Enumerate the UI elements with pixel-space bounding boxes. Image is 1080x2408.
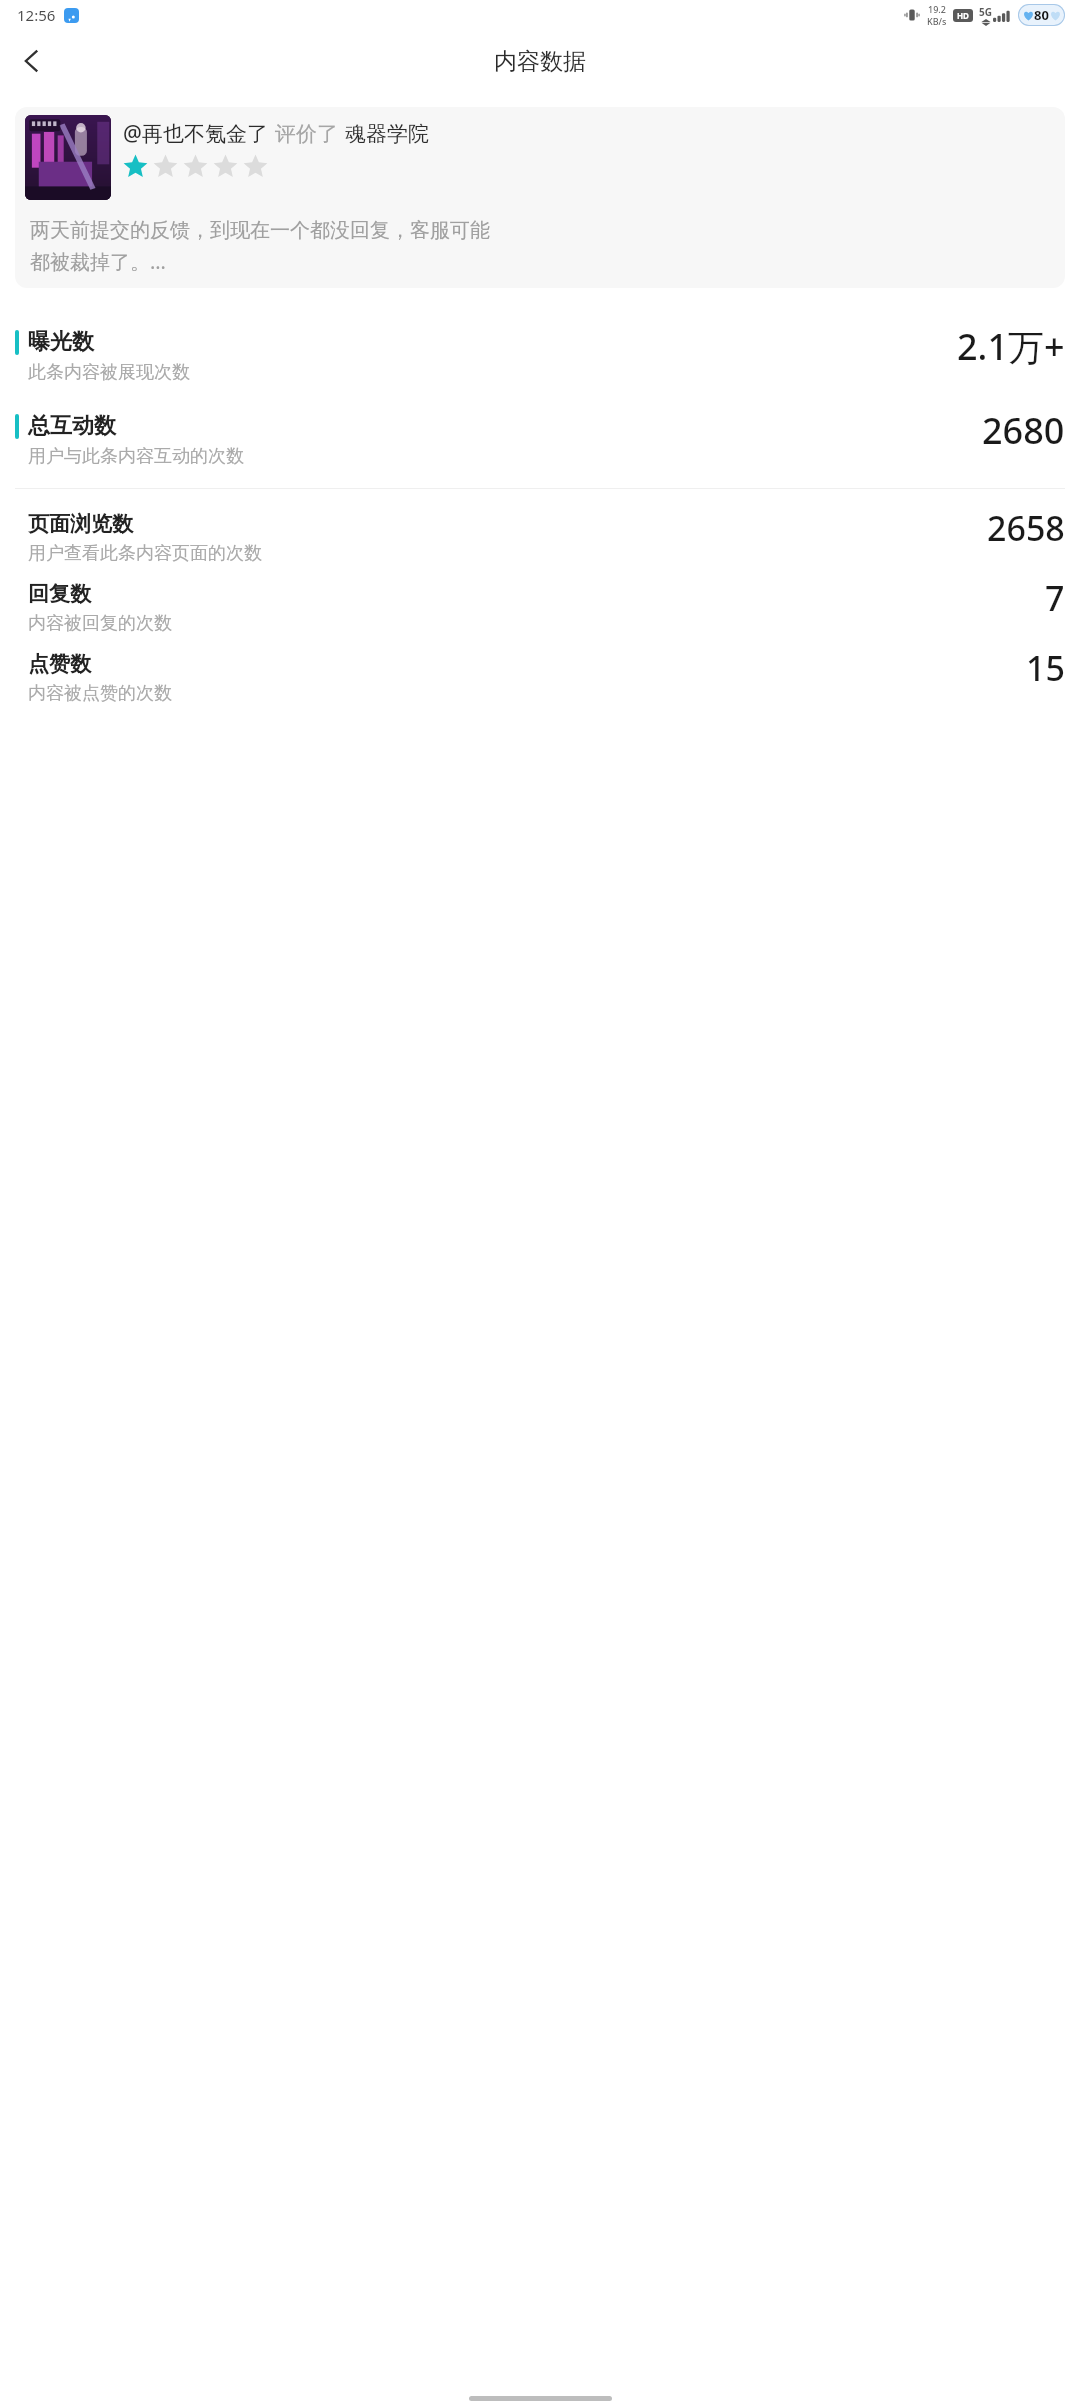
staticText: HD (957, 10, 969, 21)
staticText: 2680 (982, 406, 1065, 455)
staticText: 用户与此条内容互动的次数 (28, 445, 244, 468)
staticText: 5G (979, 5, 992, 19)
button[interactable]: 曝光数 (0, 328, 1080, 384)
staticText: 此条内容被展现次数 (28, 361, 190, 384)
staticText: 15 (1026, 645, 1065, 691)
staticText: 内容数据 (494, 47, 586, 76)
staticText: 两天前提交的反馈，到现在一个都没回复，客服可能 都被裁掉了。… (30, 218, 490, 274)
button[interactable]: 点赞数 (0, 651, 1080, 705)
button[interactable]: 页面浏览数 (0, 511, 1080, 565)
button[interactable]: @再也不氪金了 (15, 107, 1065, 288)
staticText: 80 (1034, 6, 1049, 24)
staticText: 7 (1045, 575, 1065, 621)
staticText: 内容被回复的次数 (28, 612, 172, 635)
staticText: 12:56 (17, 5, 56, 25)
staticText: 评价了 (275, 121, 338, 147)
staticText: 魂器学院 (345, 121, 429, 147)
staticText: 曝光数 (28, 328, 94, 356)
button[interactable]: 返回 (6, 35, 58, 87)
staticText: 点赞数 (28, 651, 91, 677)
staticText: KB/s (927, 15, 947, 27)
button[interactable]: 总互动数 (0, 412, 1080, 468)
button[interactable]: 回复数 (0, 581, 1080, 635)
staticText: 内容被点赞的次数 (28, 682, 172, 705)
staticText: 用户查看此条内容页面的次数 (28, 542, 262, 565)
staticText: 回复数 (28, 581, 91, 607)
staticText: 2658 (987, 505, 1065, 551)
staticText: 页面浏览数 (28, 511, 133, 537)
staticText: 2.1万+ (957, 322, 1065, 371)
staticText: 19.2 (928, 3, 946, 15)
staticText: @再也不氪金了 (123, 119, 268, 148)
staticText: 总互动数 (28, 412, 116, 440)
